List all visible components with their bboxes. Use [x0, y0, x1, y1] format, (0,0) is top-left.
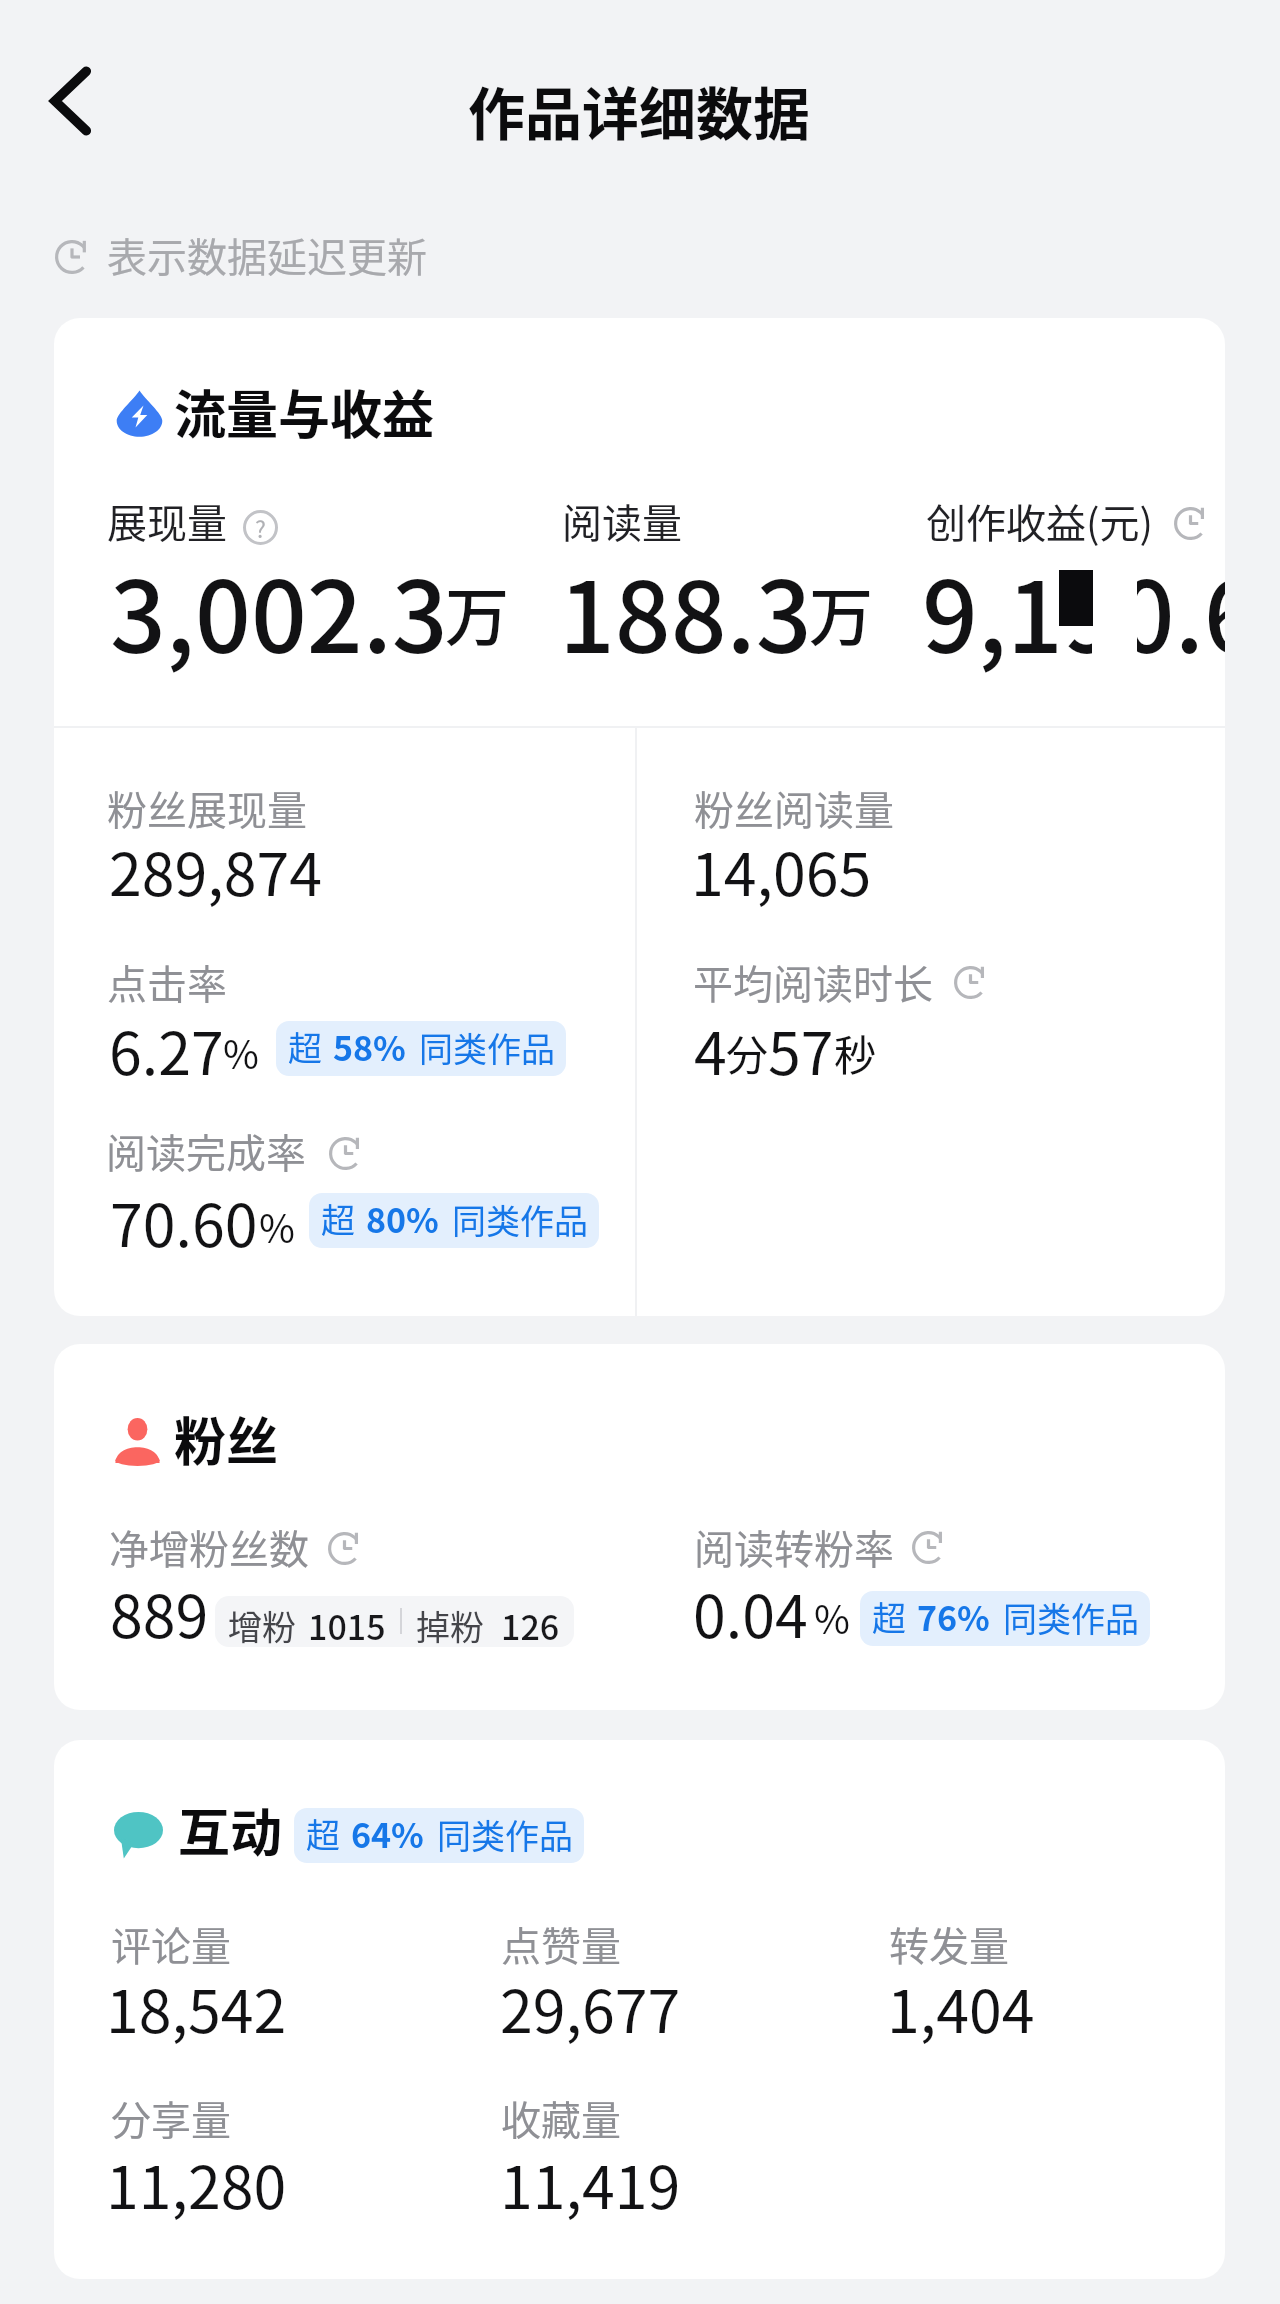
- staticText: 点击率: [107, 953, 227, 1011]
- staticText: 3,002.3: [110, 539, 448, 681]
- button[interactable]: 超: [294, 1808, 584, 1863]
- staticText: 9,190.63: [922, 539, 1225, 681]
- staticText: 4: [694, 1007, 727, 1092]
- staticText: 同类作品: [437, 1810, 573, 1859]
- staticText: 0.04: [693, 1570, 808, 1655]
- staticText: 1,404: [887, 1965, 1035, 2050]
- staticText: 评论量: [111, 1915, 231, 1973]
- staticText: 阅读完成率: [106, 1122, 306, 1180]
- staticText: 126: [501, 1601, 560, 1647]
- staticText: 64%: [351, 1809, 424, 1858]
- staticText: 创作收益(元): [926, 492, 1154, 550]
- staticText: 超: [872, 1592, 906, 1641]
- staticText: 18,542: [106, 1965, 287, 2050]
- staticText: 收藏量: [501, 2089, 621, 2147]
- staticText: 粉丝展现量: [107, 779, 307, 837]
- staticText: 净增粉丝数: [109, 1518, 309, 1576]
- staticText: 80%: [366, 1194, 439, 1243]
- staticText: 同类作品: [419, 1023, 555, 1072]
- staticText: 分: [726, 1022, 769, 1083]
- staticText: 29,677: [500, 1965, 681, 2050]
- staticText: 分享量: [111, 2089, 231, 2147]
- staticText: %: [223, 1024, 259, 1080]
- staticText: 平均阅读时长: [693, 953, 933, 1011]
- staticText: 超: [306, 1809, 340, 1858]
- staticText: 11,419: [500, 2141, 681, 2226]
- staticText: 表示数据延迟更新: [107, 226, 427, 284]
- staticText: 阅读转粉率: [694, 1518, 894, 1576]
- staticText: 阅读量: [562, 492, 682, 550]
- staticText: 11,280: [106, 2141, 287, 2226]
- staticText: %: [259, 1198, 295, 1254]
- staticText: 掉粉: [416, 1601, 484, 1647]
- staticText: 粉丝阅读量: [694, 779, 894, 837]
- staticText: ?: [255, 511, 266, 544]
- button[interactable]: 超: [860, 1591, 1150, 1646]
- staticText: 流量与收益: [174, 374, 435, 449]
- staticText: 超: [321, 1194, 355, 1243]
- staticText: 289,874: [109, 828, 322, 913]
- staticText: 展现量: [107, 492, 227, 550]
- staticText: 57: [768, 1007, 834, 1092]
- staticText: 粉丝: [174, 1401, 279, 1476]
- staticText: 互动: [178, 1792, 283, 1867]
- staticText: 76%: [917, 1592, 990, 1641]
- staticText: 万: [809, 566, 873, 659]
- staticText: 转发量: [889, 1915, 1009, 1973]
- button[interactable]: 粉丝: [54, 1344, 1225, 1710]
- staticText: 增粉: [228, 1601, 296, 1647]
- staticText: 889: [110, 1570, 209, 1655]
- staticText: 70.60: [110, 1179, 258, 1264]
- staticText: 秒: [834, 1022, 877, 1083]
- staticText: 万: [445, 566, 509, 659]
- staticText: 188.3: [559, 539, 812, 681]
- staticText: 14,065: [691, 828, 872, 913]
- staticText: 同类作品: [452, 1195, 588, 1244]
- button[interactable]: 流量与收益: [54, 318, 1225, 1316]
- staticText: 58%: [333, 1022, 406, 1071]
- staticText: 超: [288, 1022, 322, 1071]
- button[interactable]: 互动: [54, 1740, 1225, 2279]
- staticText: %: [814, 1589, 850, 1645]
- button[interactable]: 超: [309, 1193, 599, 1248]
- staticText: 6.27: [109, 1007, 224, 1092]
- staticText: 同类作品: [1003, 1593, 1139, 1642]
- button[interactable]: 超: [276, 1021, 566, 1076]
- staticText: 点赞量: [501, 1915, 621, 1973]
- button[interactable]: Back: [22, 53, 118, 149]
- staticText: 1015: [308, 1601, 386, 1647]
- staticText: 作品详细数据: [468, 69, 810, 152]
